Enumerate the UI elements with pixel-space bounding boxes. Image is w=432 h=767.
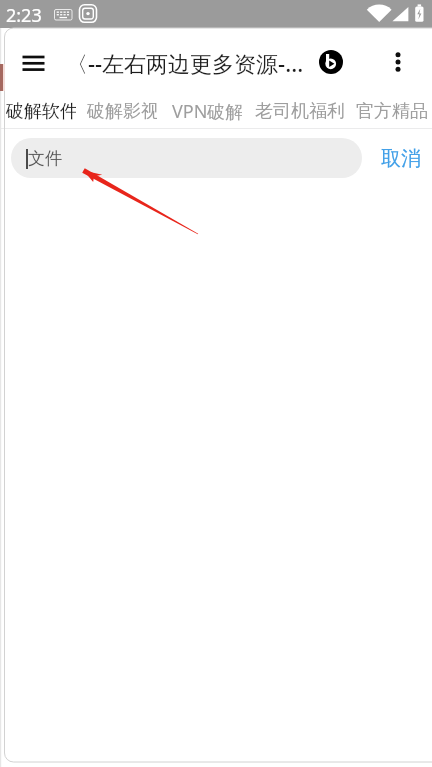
staticText: 官方精品 bbox=[356, 100, 428, 123]
staticText: 文件 bbox=[28, 148, 62, 169]
staticText: 取消 bbox=[381, 146, 421, 171]
button[interactable]: Menu bbox=[13, 43, 53, 83]
staticText: 2:23 bbox=[6, 3, 42, 28]
button[interactable]: 破解软件 bbox=[6, 93, 76, 129]
button[interactable]: 老司机福利 bbox=[255, 93, 345, 129]
staticText: 破解软件 bbox=[6, 100, 76, 123]
button[interactable]: VPN破解 bbox=[172, 93, 242, 129]
button[interactable]: 官方精品 bbox=[356, 93, 428, 129]
button[interactable]: More options bbox=[386, 50, 410, 74]
button[interactable]: 文件 bbox=[11, 138, 362, 178]
button[interactable]: Beats bbox=[319, 50, 343, 74]
staticText: 破解影视 bbox=[87, 100, 157, 123]
staticText: 老司机福利 bbox=[255, 100, 345, 123]
button[interactable]: 取消 bbox=[376, 138, 426, 178]
staticText: VPN破解 bbox=[172, 99, 242, 124]
button[interactable]: 破解影视 bbox=[87, 93, 157, 129]
button[interactable]: 〈--左右两边更多资源-... bbox=[66, 48, 304, 78]
